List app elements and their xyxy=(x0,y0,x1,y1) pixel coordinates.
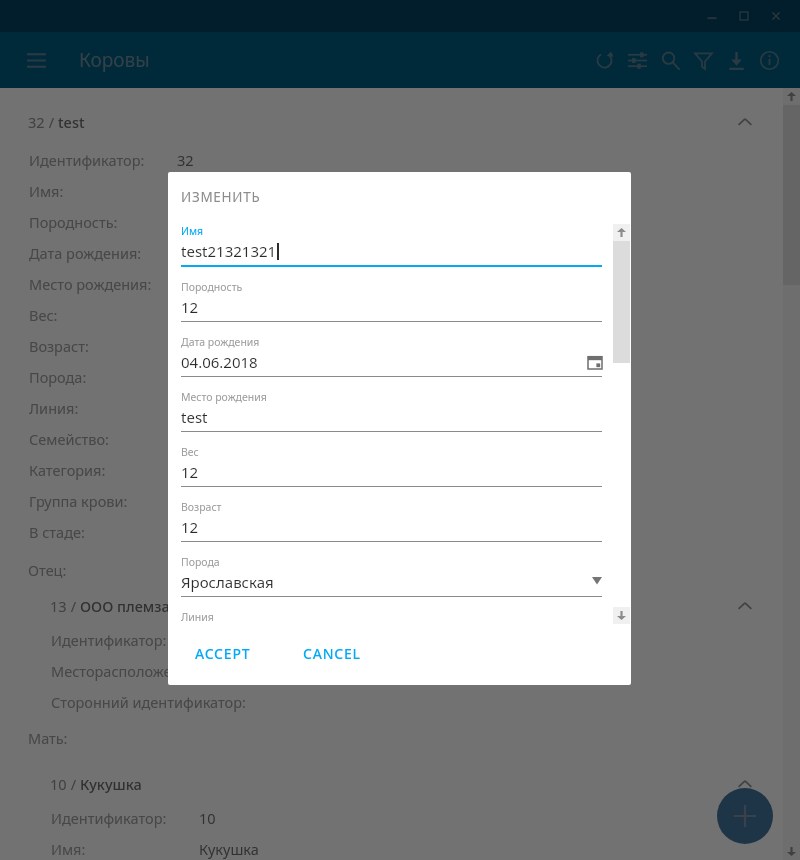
staticText: / xyxy=(67,596,80,616)
button[interactable]: Filter xyxy=(687,44,720,77)
staticText: CANCEL xyxy=(303,644,361,663)
button[interactable]: Download xyxy=(720,44,753,77)
button[interactable]: 32 xyxy=(28,102,783,142)
staticText: test21321321 xyxy=(177,181,269,201)
staticText: / xyxy=(67,774,80,794)
staticText: 13 xyxy=(199,630,216,650)
button[interactable]: Линия xyxy=(181,610,602,624)
staticText: ИЗМЕНИТЬ xyxy=(181,188,261,206)
staticText: Сторонний идентификатор: xyxy=(51,692,246,712)
staticText: test xyxy=(58,112,85,132)
button[interactable]: Дата рождения xyxy=(181,335,602,377)
button[interactable]: Возраст xyxy=(181,500,602,542)
staticText: Дата рождения xyxy=(181,335,260,349)
button[interactable]: Scroll down xyxy=(783,843,800,860)
staticText: В стаде: xyxy=(29,522,85,542)
button[interactable]: Scroll down xyxy=(613,607,630,624)
staticText: 12 xyxy=(181,517,199,537)
staticText: Место рождения xyxy=(181,390,267,404)
staticText: 10 xyxy=(199,808,216,828)
staticText: 1-1 xyxy=(177,429,199,449)
staticText: / xyxy=(45,112,58,132)
button[interactable]: Порода xyxy=(181,555,602,597)
button[interactable]: Search xyxy=(654,44,687,77)
button[interactable]: ACCEPT xyxy=(181,636,265,671)
staticText: Ярославская xyxy=(177,367,267,387)
staticText: ООО племзавод Ярославка xyxy=(80,596,275,616)
staticText: Имя: xyxy=(29,181,64,201)
staticText: Месторасположение: xyxy=(51,661,202,681)
staticText: 12 xyxy=(177,336,194,356)
staticText: Ярославская xyxy=(181,572,274,592)
button[interactable]: Minimize xyxy=(696,0,728,32)
staticText: Линия: xyxy=(29,398,79,418)
staticText: Категория: xyxy=(29,460,106,480)
staticText: Кукушка xyxy=(199,839,259,859)
staticText: Имя xyxy=(181,224,204,238)
staticText: Вес: xyxy=(29,305,58,325)
staticText: Место рождения: xyxy=(29,274,152,294)
button[interactable]: Menu xyxy=(14,38,58,82)
staticText: test xyxy=(181,407,208,427)
button[interactable]: Add xyxy=(717,788,773,844)
staticText: Породность xyxy=(181,280,243,294)
staticText: Вес xyxy=(181,445,199,459)
staticText: Вис Бэк Айдиал 1013415 xyxy=(177,398,349,418)
button[interactable]: Scroll up xyxy=(613,224,630,241)
staticText: Линия xyxy=(181,610,214,624)
staticText: True xyxy=(177,522,208,542)
staticText: 12 xyxy=(177,305,194,325)
staticText: A xyxy=(177,460,187,480)
staticText: Дата рождения: xyxy=(29,243,142,263)
staticText: 4 июня 2018 г. (понедельник) xyxy=(177,243,383,263)
staticText: test xyxy=(177,274,203,294)
staticText: 13 xyxy=(50,596,67,616)
staticText: Коровы xyxy=(79,47,150,73)
button[interactable]: Maximize xyxy=(728,0,760,32)
staticText: Идентификатор: xyxy=(51,808,167,828)
staticText: Мать: xyxy=(28,728,68,748)
button[interactable]: Вес xyxy=(181,445,602,487)
staticText: Идентификатор: xyxy=(29,150,145,170)
staticText: J+ xyxy=(177,491,190,511)
staticText: Группа крови: xyxy=(29,491,128,511)
staticText: 12 xyxy=(181,462,199,482)
button[interactable]: Имя xyxy=(181,224,602,267)
staticText: 12 xyxy=(177,212,194,232)
staticText: 32 xyxy=(177,150,194,170)
staticText: Идентификатор: xyxy=(51,630,167,650)
button[interactable]: Породность xyxy=(181,280,602,322)
staticText: 32 xyxy=(28,112,45,132)
staticText: Порода xyxy=(181,555,220,569)
button[interactable]: Tune xyxy=(621,44,654,77)
button[interactable]: Место рождения xyxy=(181,390,602,432)
staticText: test21321321 xyxy=(181,241,277,261)
button[interactable]: Refresh xyxy=(588,44,621,77)
staticText: Отец: xyxy=(28,560,67,580)
button[interactable]: 13 xyxy=(28,586,783,626)
staticText: Порода: xyxy=(29,367,87,387)
staticText: Имя: xyxy=(51,839,86,859)
button[interactable]: 10 xyxy=(28,764,783,804)
staticText: Породность: xyxy=(29,212,118,232)
button[interactable]: Close xyxy=(760,0,792,32)
button[interactable]: Scroll up xyxy=(783,88,800,105)
button[interactable]: CANCEL xyxy=(289,636,375,671)
button[interactable]: Info xyxy=(753,44,786,77)
staticText: 04.06.2018 xyxy=(181,352,258,372)
staticText: 10 xyxy=(50,774,67,794)
staticText: Возраст xyxy=(181,500,222,514)
staticText: 12 xyxy=(181,297,199,317)
staticText: Кукушка xyxy=(80,774,142,794)
staticText: Семейство: xyxy=(29,429,109,449)
staticText: Возраст: xyxy=(29,336,89,356)
staticText: ACCEPT xyxy=(195,644,251,663)
